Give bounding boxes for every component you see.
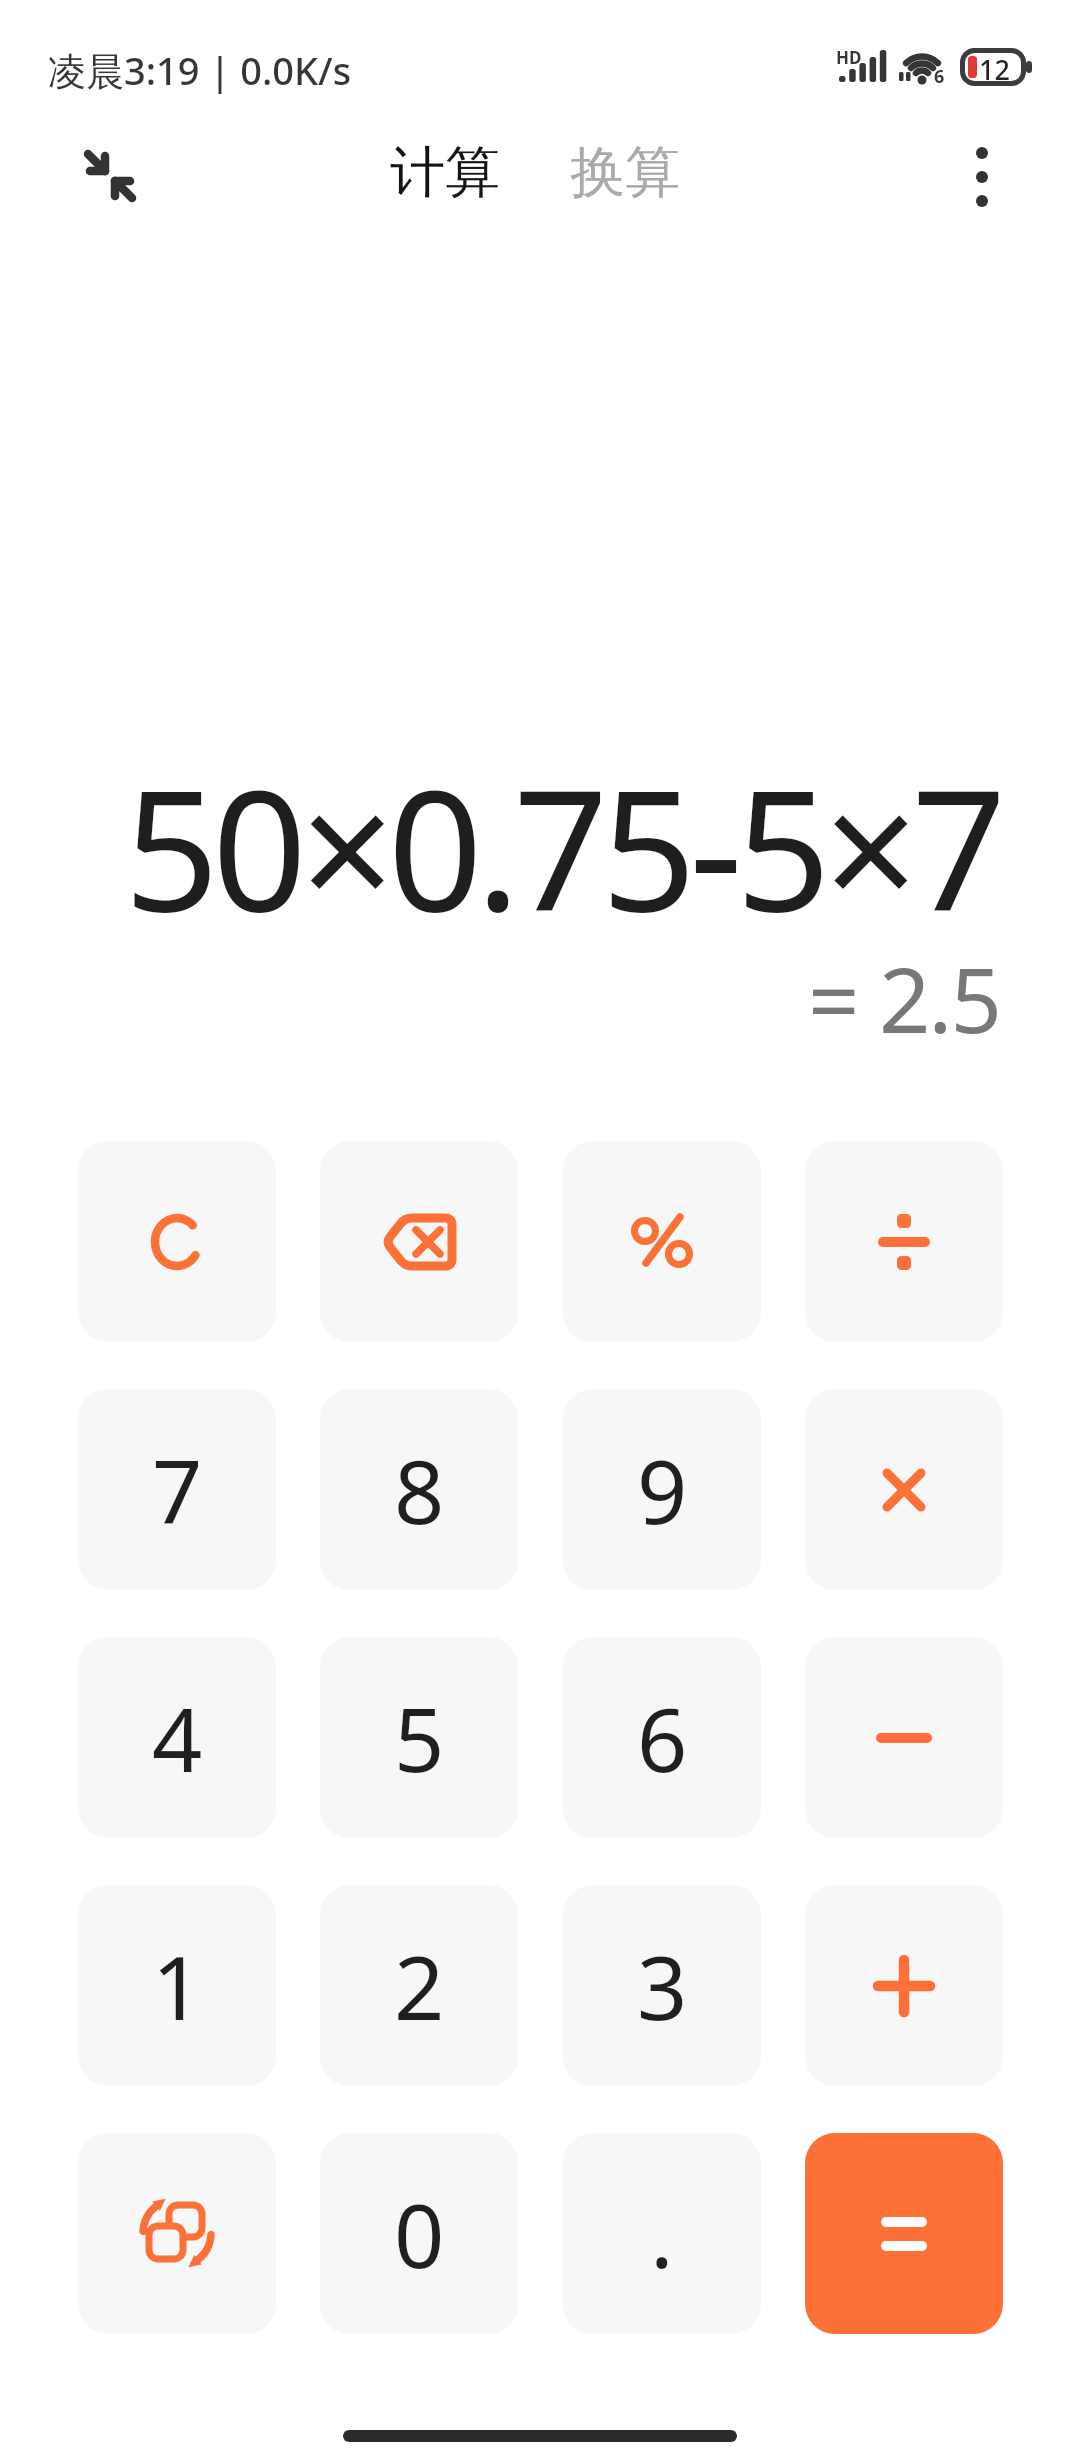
button[interactable]: 5 — [320, 1637, 518, 1838]
staticText: 换算 — [570, 138, 680, 207]
button[interactable]: 1 — [78, 1885, 276, 2086]
button[interactable]: 6 — [563, 1637, 761, 1838]
button[interactable] — [805, 1637, 1003, 1838]
staticText: 0 — [394, 2174, 445, 2294]
button[interactable]: 8 — [320, 1389, 518, 1590]
staticText: 4 — [152, 1678, 203, 1798]
staticText: 6 — [934, 64, 945, 89]
button[interactable] — [805, 1885, 1003, 2086]
button[interactable]: 9 — [563, 1389, 761, 1590]
staticText: 2 — [394, 1926, 445, 2046]
button[interactable] — [78, 2133, 276, 2334]
button[interactable]: 换算 — [570, 138, 680, 207]
staticText: . — [650, 2174, 674, 2294]
staticText: 8 — [394, 1430, 445, 1550]
staticText: HD — [836, 46, 862, 69]
button[interactable] — [563, 1141, 761, 1342]
button[interactable]: 2 — [320, 1885, 518, 2086]
button[interactable]: 计算 — [390, 138, 500, 207]
button[interactable] — [78, 1141, 276, 1342]
button[interactable]: 3 — [563, 1885, 761, 2086]
staticText: 3 — [637, 1926, 688, 2046]
button[interactable]: 0 — [320, 2133, 518, 2334]
button[interactable] — [76, 142, 144, 210]
button[interactable] — [320, 1141, 518, 1342]
staticText: 6 — [637, 1678, 688, 1798]
staticText: 凌晨3:19 | 0.0K/s — [48, 44, 352, 96]
staticText: 9 — [637, 1430, 688, 1550]
button[interactable] — [805, 1141, 1003, 1342]
button[interactable] — [805, 2133, 1003, 2334]
staticText: 12 — [979, 51, 1010, 88]
staticText: 7 — [152, 1430, 203, 1550]
button[interactable] — [952, 146, 1012, 206]
button[interactable] — [805, 1389, 1003, 1590]
button[interactable]: 7 — [78, 1389, 276, 1590]
button[interactable]: . — [563, 2133, 761, 2334]
staticText: 5 — [394, 1678, 445, 1798]
button[interactable]: 4 — [78, 1637, 276, 1838]
staticText: 50×0.75-5×7 — [124, 734, 1000, 960]
staticText: 1 — [152, 1926, 203, 2046]
staticText: 计算 — [390, 138, 500, 207]
staticText: = 2.5 — [808, 937, 1000, 1057]
